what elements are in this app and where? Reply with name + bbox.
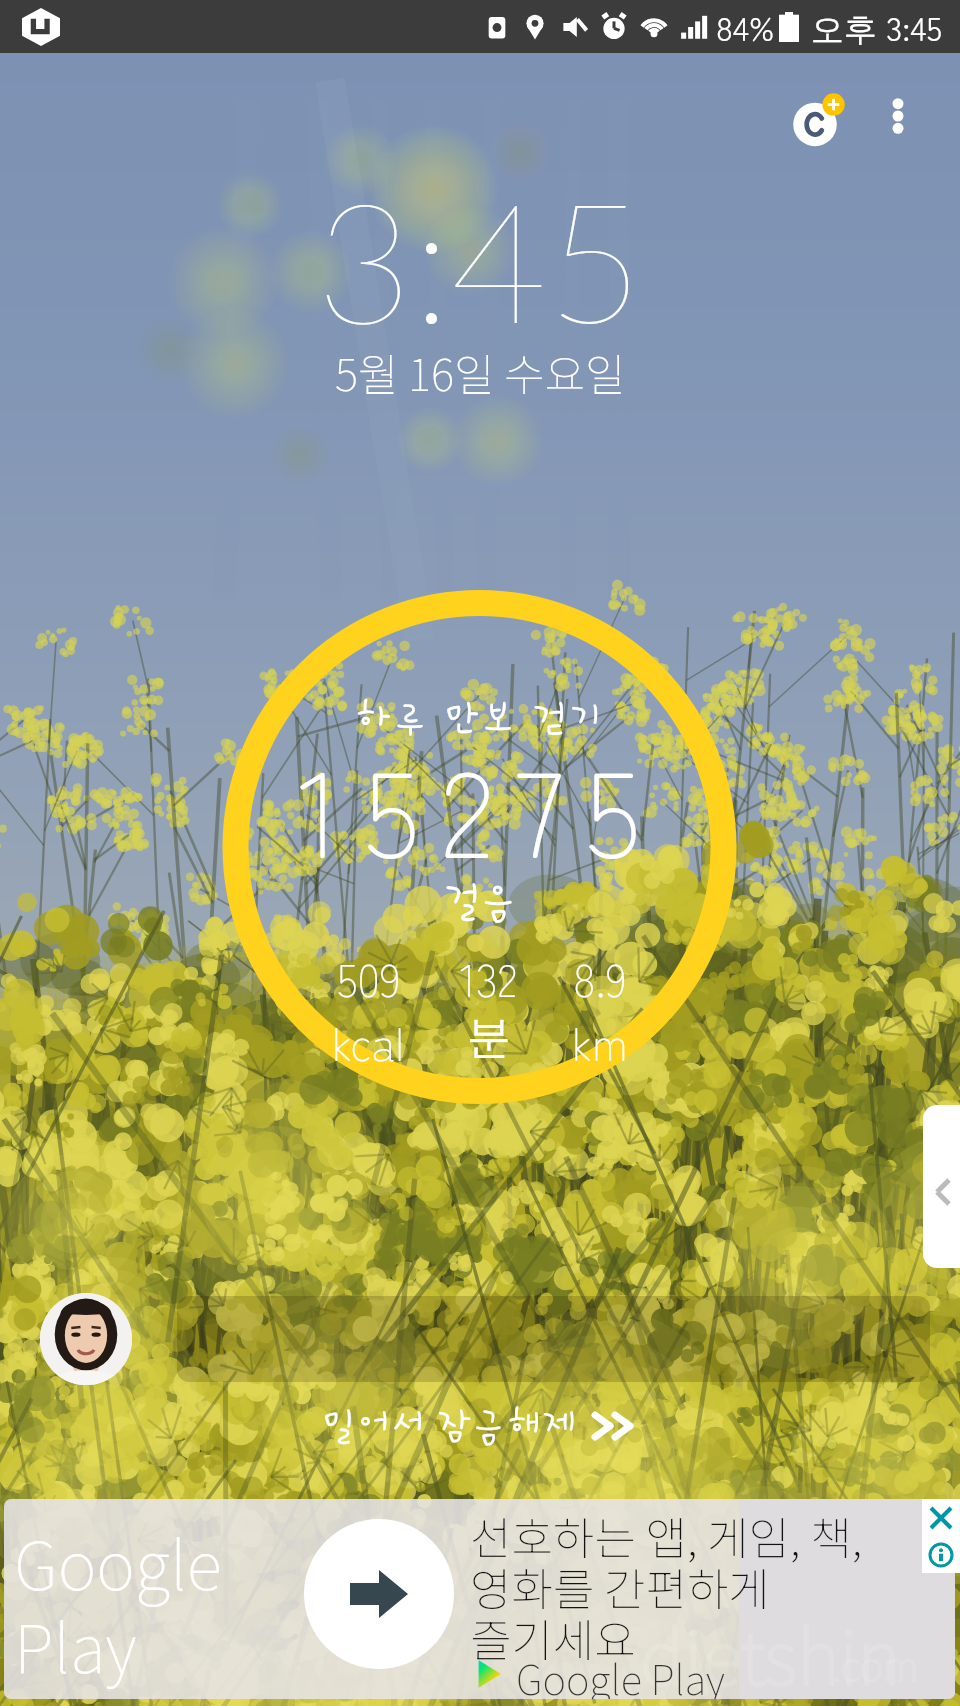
staticText: 509 bbox=[337, 946, 401, 1010]
staticText: 오후 3:45 bbox=[811, 3, 942, 51]
staticText: Google Play bbox=[516, 1649, 725, 1699]
staticText: 하루 만보 걷기 bbox=[355, 698, 606, 742]
staticText: 8.9 bbox=[573, 946, 627, 1010]
button[interactable]: More options bbox=[870, 88, 926, 144]
button[interactable]: Cashwalk app bbox=[783, 86, 847, 150]
staticText: 84% bbox=[716, 3, 775, 51]
staticText: kcal bbox=[332, 1010, 405, 1074]
staticText: 걸음 bbox=[443, 878, 518, 924]
staticText: 15275 bbox=[298, 719, 662, 893]
button[interactable]: Install bbox=[304, 1519, 454, 1669]
staticText: km bbox=[572, 1010, 628, 1074]
button[interactable] bbox=[177, 1296, 930, 1382]
button[interactable]: Daily steps bbox=[228, 600, 732, 1104]
button[interactable]: Close ad bbox=[922, 1499, 960, 1536]
button[interactable]: Open panel bbox=[923, 1105, 960, 1268]
button[interactable]: Ad info bbox=[922, 1536, 960, 1573]
staticText: Google Play bbox=[14, 1513, 222, 1692]
button[interactable]: Google Play bbox=[4, 1499, 955, 1699]
staticText: 밀어서 잠금해제 bbox=[321, 1405, 577, 1447]
staticText: 분 bbox=[467, 1010, 511, 1065]
button[interactable]: Owner profile bbox=[40, 1293, 132, 1385]
staticText: 132 bbox=[460, 946, 518, 1010]
staticText: 5월 16일 수요일 bbox=[335, 340, 626, 404]
staticText: 선호하는 앱, 게임, 책, 영화를 간편하게 즐기세요 bbox=[470, 1503, 863, 1670]
staticText: 3:45 bbox=[316, 159, 644, 358]
staticText: dietshin bbox=[640, 1599, 901, 1699]
